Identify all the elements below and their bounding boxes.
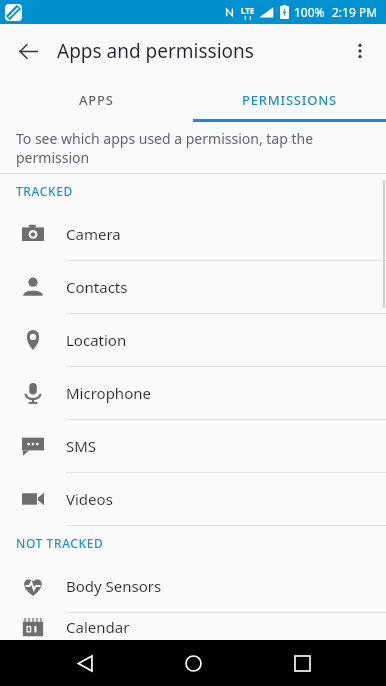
staticText: TRACKED [16,183,73,199]
staticText: APPS [79,91,114,109]
button[interactable]: SMS [0,420,386,473]
button[interactable]: APPS [0,78,193,122]
staticText: Contacts [66,277,128,297]
staticText: Camera [66,224,121,244]
button[interactable]: PERMISSIONS [193,78,386,122]
staticText: Body Sensors [66,576,162,596]
staticText: Apps and permissions [57,38,254,64]
staticText: 100% [294,4,325,20]
staticText: Location [66,330,127,350]
staticText: Videos [66,489,113,509]
staticText: NOT TRACKED [16,535,104,551]
staticText: SMS [66,436,97,456]
button[interactable]: Microphone [0,367,386,420]
staticText: 2:19 PM [332,4,378,20]
button[interactable]: Back [8,31,48,71]
staticText: PERMISSIONS [242,91,338,109]
button[interactable]: Recent apps [278,640,326,686]
staticText: Calendar [66,617,130,637]
button[interactable]: Body Sensors [0,560,386,613]
staticText: LTE [241,5,255,16]
button[interactable]: Camera [0,208,386,261]
button[interactable]: Home [169,640,217,686]
button[interactable]: Calendar [0,613,386,640]
button[interactable]: More options [340,31,380,71]
staticText: To see which apps used a permission, tap… [16,129,386,167]
button[interactable]: Location [0,314,386,367]
staticText: Microphone [66,383,151,403]
button[interactable]: Back [61,640,109,686]
button[interactable]: Contacts [0,261,386,314]
button[interactable]: Videos [0,473,386,526]
